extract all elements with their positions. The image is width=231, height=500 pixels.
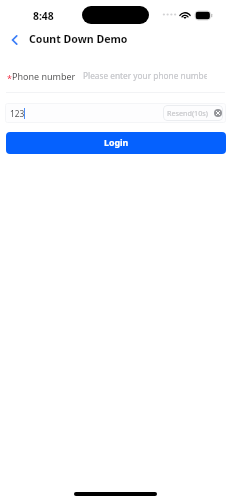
staticText: Resend(10s) [167,108,208,118]
staticText: Phone number [12,70,76,82]
button[interactable]: 123 [5,103,226,123]
button[interactable]: Login [6,132,226,154]
button[interactable]: * [0,59,231,92]
staticText: Login [104,137,129,149]
staticText: Please enter your phone number [83,70,207,81]
staticText: * [7,72,12,84]
staticText: 8:48 [33,9,54,23]
button[interactable]: Clear input [214,109,222,117]
staticText: 123 [10,108,25,119]
button[interactable]: Back [3,28,26,52]
button[interactable]: Resend(10s) [163,105,223,121]
staticText: Count Down Demo [29,32,128,46]
